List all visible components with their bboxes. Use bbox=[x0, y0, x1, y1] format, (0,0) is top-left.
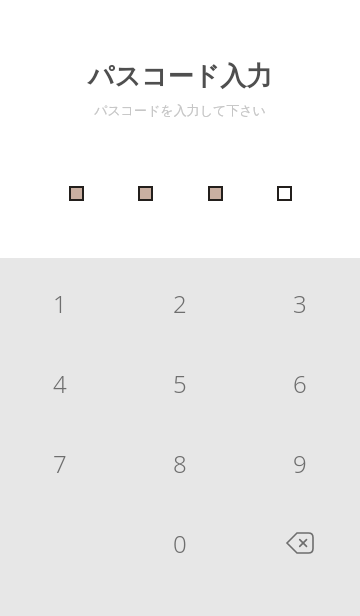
staticText: 8 bbox=[173, 447, 187, 480]
button[interactable]: Delete bbox=[240, 503, 360, 583]
button[interactable]: 9 bbox=[240, 423, 360, 503]
staticText: 3 bbox=[293, 287, 307, 320]
button[interactable]: 4 bbox=[0, 343, 120, 423]
button[interactable]: 7 bbox=[0, 423, 120, 503]
button[interactable]: 2 bbox=[120, 263, 240, 343]
staticText: パスコード入力 bbox=[0, 60, 360, 93]
button[interactable]: 5 bbox=[120, 343, 240, 423]
staticText: 7 bbox=[53, 447, 67, 480]
button[interactable]: 0 bbox=[120, 503, 240, 583]
button[interactable]: 8 bbox=[120, 423, 240, 503]
staticText: 4 bbox=[53, 367, 67, 400]
button[interactable]: 3 bbox=[240, 263, 360, 343]
staticText: 2 bbox=[173, 287, 187, 320]
staticText: 1 bbox=[53, 287, 67, 320]
staticText: 0 bbox=[173, 527, 187, 560]
staticText: 5 bbox=[173, 367, 187, 400]
staticText: パスコードを入力して下さい bbox=[0, 102, 360, 118]
button[interactable]: 6 bbox=[240, 343, 360, 423]
button[interactable]: 1 bbox=[0, 263, 120, 343]
staticText: 9 bbox=[293, 447, 307, 480]
staticText: 6 bbox=[293, 367, 307, 400]
